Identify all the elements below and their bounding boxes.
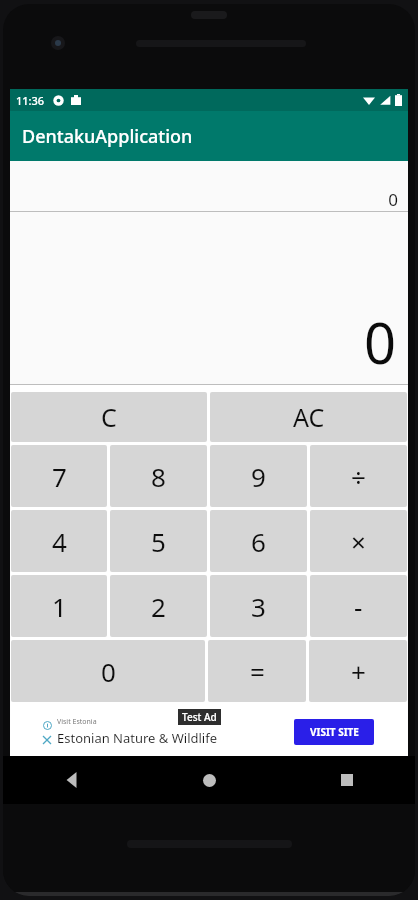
staticText: 1: [52, 589, 67, 624]
button[interactable]: Home: [141, 756, 278, 804]
staticText: ×: [351, 524, 366, 559]
staticText: =: [250, 654, 265, 689]
button[interactable]: 5: [110, 510, 207, 572]
staticText: -: [354, 589, 363, 624]
button[interactable]: +: [309, 640, 407, 702]
staticText: 8: [151, 459, 166, 494]
button[interactable]: VISIT SITE: [294, 719, 374, 745]
staticText: ÷: [351, 459, 366, 494]
staticText: 4: [52, 524, 67, 559]
staticText: C: [101, 400, 117, 434]
button[interactable]: 6: [210, 510, 307, 572]
staticText: 0: [388, 188, 398, 211]
button[interactable]: 2: [110, 575, 207, 637]
button[interactable]: Back: [3, 756, 141, 804]
staticText: VISIT SITE: [310, 725, 359, 739]
staticText: 6: [251, 524, 266, 559]
button[interactable]: 4: [11, 510, 107, 572]
staticText: 0: [363, 304, 396, 380]
button[interactable]: -: [310, 575, 407, 637]
button[interactable]: Recents: [278, 756, 415, 804]
button[interactable]: 9: [210, 445, 307, 507]
button[interactable]: Visit Estonia: [40, 708, 378, 756]
staticText: 9: [251, 459, 266, 494]
staticText: +: [351, 654, 366, 689]
button[interactable]: AC: [210, 392, 407, 442]
button[interactable]: 3: [210, 575, 307, 637]
button[interactable]: 0: [11, 640, 205, 702]
staticText: AC: [293, 400, 325, 434]
staticText: DentakuApplication: [22, 124, 193, 149]
staticText: 5: [151, 524, 166, 559]
staticText: Visit Estonia: [57, 717, 97, 727]
button[interactable]: 8: [110, 445, 207, 507]
staticText: 3: [251, 589, 266, 624]
staticText: 0: [101, 654, 116, 689]
button[interactable]: =: [208, 640, 306, 702]
staticText: 2: [151, 589, 166, 624]
button[interactable]: 1: [11, 575, 107, 637]
staticText: 7: [52, 459, 67, 494]
button[interactable]: 7: [11, 445, 107, 507]
staticText: Test Ad: [182, 710, 217, 724]
button[interactable]: C: [11, 392, 207, 442]
button[interactable]: ÷: [310, 445, 407, 507]
button[interactable]: ×: [310, 510, 407, 572]
staticText: 11:36: [16, 93, 45, 108]
staticText: Estonian Nature & Wildlife: [57, 729, 218, 747]
